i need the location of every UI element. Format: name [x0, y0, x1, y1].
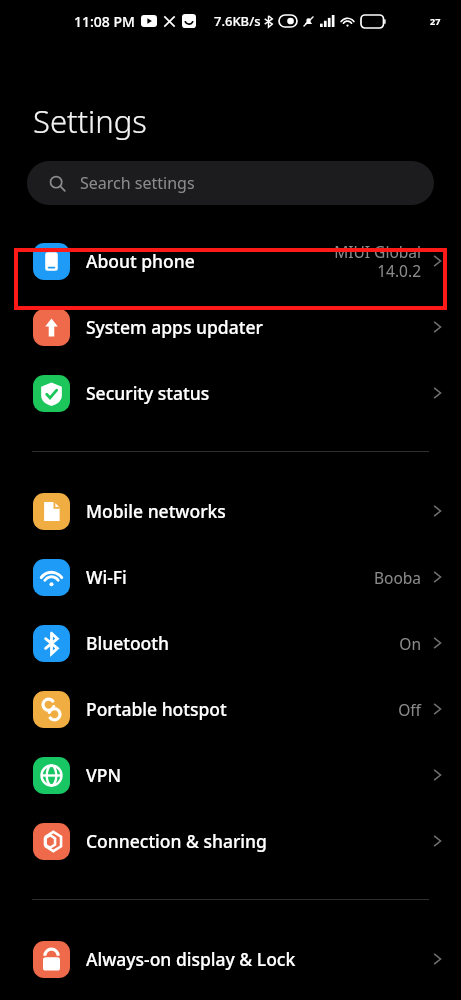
staticText: System apps updater: [86, 315, 321, 339]
staticText: Mobile networks: [86, 499, 321, 523]
button[interactable]: About phone: [0, 228, 461, 294]
staticText: On: [399, 633, 421, 654]
staticText: Settings: [33, 100, 147, 142]
button[interactable]: System apps updater: [0, 294, 461, 360]
button[interactable]: Always-on display & Lock: [0, 926, 461, 992]
button[interactable]: Bluetooth: [0, 610, 461, 676]
staticText: Search settings: [80, 172, 195, 194]
staticText: Bluetooth: [86, 631, 321, 655]
button[interactable]: Wi-Fi: [0, 544, 461, 610]
button[interactable]: Portable hotspot: [0, 676, 461, 742]
staticText: 7.6KB/s: [214, 12, 261, 30]
button[interactable]: Connection & sharing: [0, 808, 461, 874]
staticText: 11:08 PM: [74, 12, 135, 31]
button[interactable]: Security status: [0, 360, 461, 426]
staticText: Off: [398, 699, 421, 720]
staticText: Security status: [86, 381, 321, 405]
staticText: Booba: [373, 567, 421, 588]
button[interactable]: VPN: [0, 742, 461, 808]
staticText: VPN: [86, 763, 321, 787]
staticText: Always-on display & Lock: [86, 947, 321, 971]
staticText: About phone: [86, 249, 321, 273]
button[interactable]: Search settings: [27, 161, 434, 205]
staticText: Connection & sharing: [86, 829, 321, 853]
staticText: Wi-Fi: [86, 565, 321, 589]
staticText: Portable hotspot: [86, 697, 321, 721]
staticText: MIUI Global 14.0.2: [334, 241, 421, 281]
button[interactable]: Mobile networks: [0, 478, 461, 544]
staticText: 27: [430, 15, 441, 27]
